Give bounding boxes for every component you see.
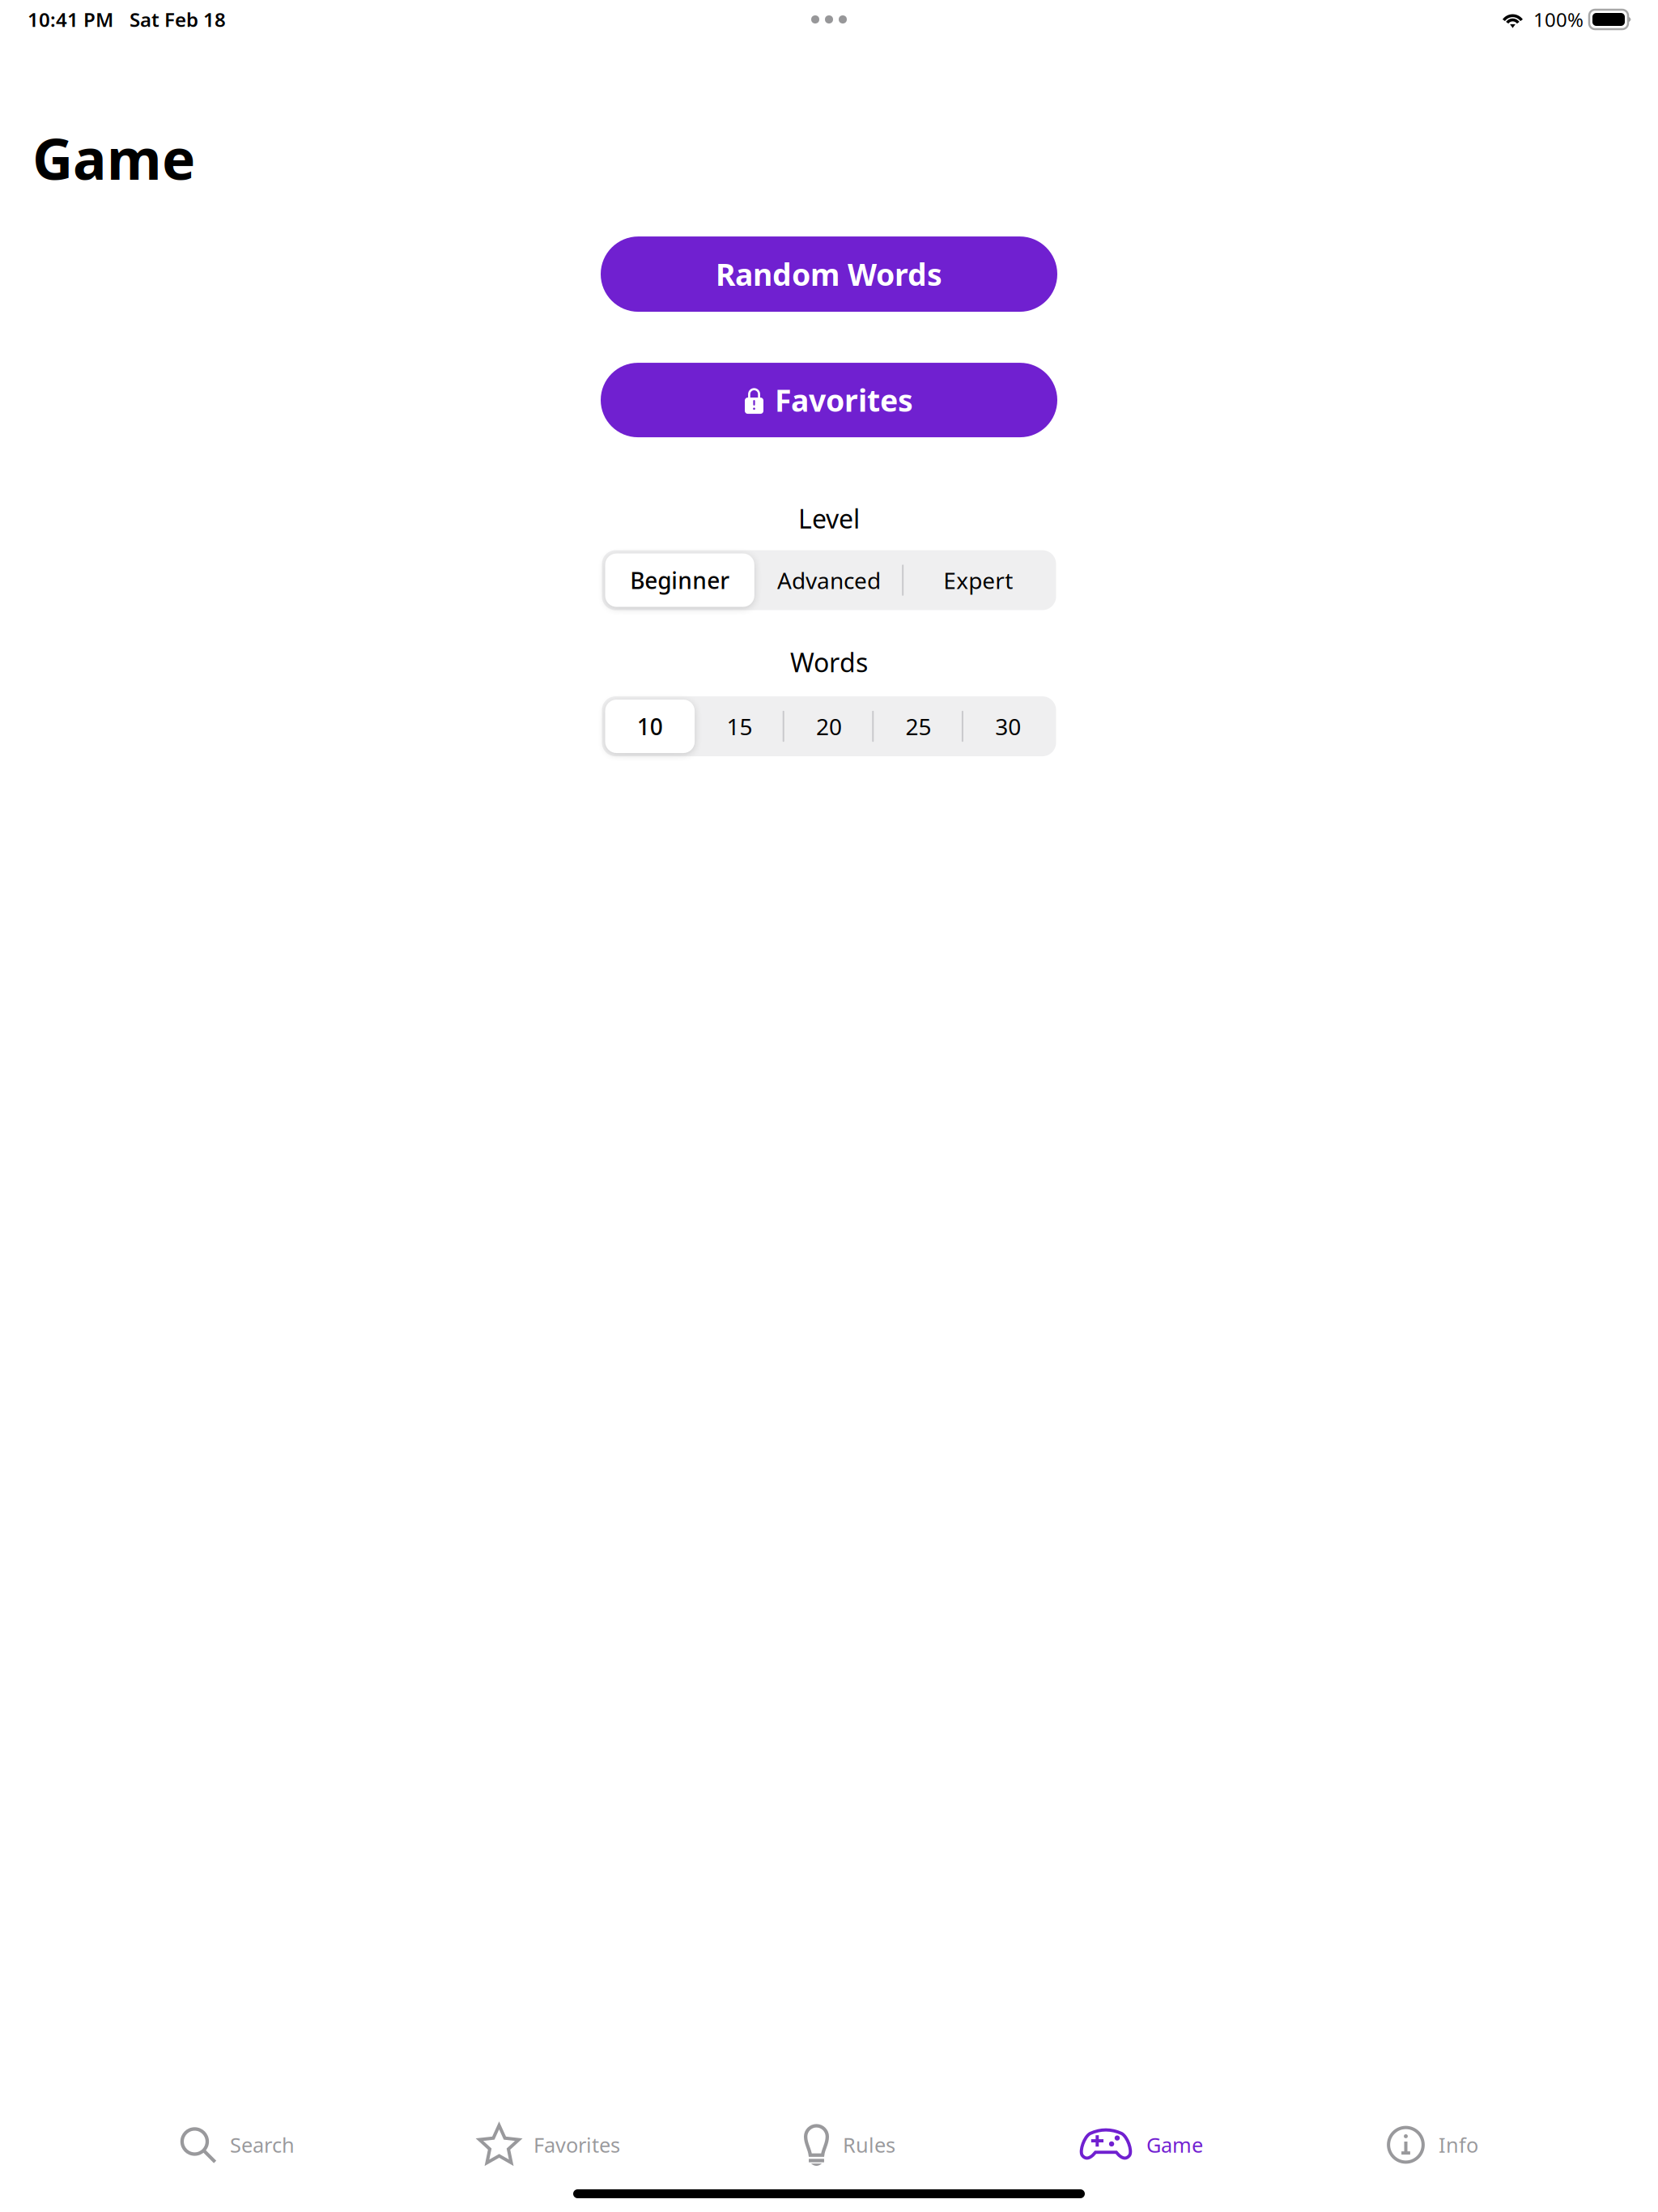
button[interactable]: 15 (695, 696, 784, 756)
button[interactable]: Rules (804, 2116, 895, 2174)
staticText: Favorites (775, 380, 913, 420)
button[interactable]: 10 (605, 696, 695, 756)
button[interactable]: Favorites (601, 363, 1057, 437)
button[interactable]: Random Words (601, 237, 1057, 312)
staticText: 25 (906, 711, 931, 741)
staticText: 100% (1533, 7, 1584, 32)
staticText: Game (1146, 2131, 1203, 2158)
staticText: 30 (995, 711, 1021, 741)
staticText: 10 (637, 711, 663, 741)
staticText: Sat Feb 18 (130, 7, 226, 32)
button[interactable]: Info (1387, 2116, 1478, 2174)
staticText: Expert (943, 565, 1013, 595)
staticText: Level (798, 501, 860, 536)
staticText: Random Words (716, 254, 942, 294)
button[interactable]: Expert (904, 550, 1053, 610)
staticText: 20 (816, 711, 842, 741)
button[interactable]: Multitasking controls (784, 2, 874, 37)
staticText: Search (230, 2131, 295, 2158)
staticText: Beginner (630, 565, 730, 595)
button[interactable]: 20 (784, 696, 874, 756)
staticText: Words (790, 645, 868, 679)
staticText: Info (1439, 2131, 1478, 2158)
button[interactable]: 25 (874, 696, 963, 756)
button[interactable]: Game (1079, 2116, 1203, 2174)
staticText: 15 (727, 711, 752, 741)
staticText: Advanced (777, 565, 881, 595)
staticText: Favorites (534, 2131, 620, 2158)
staticText: Game (32, 121, 195, 195)
staticText: 10:41 PM (28, 7, 113, 32)
button[interactable]: Advanced (754, 550, 904, 610)
staticText: Rules (843, 2131, 895, 2158)
button[interactable]: Beginner (605, 550, 754, 610)
button[interactable]: Search (180, 2116, 295, 2174)
button[interactable]: 30 (963, 696, 1053, 756)
button[interactable]: Favorites (478, 2116, 620, 2174)
